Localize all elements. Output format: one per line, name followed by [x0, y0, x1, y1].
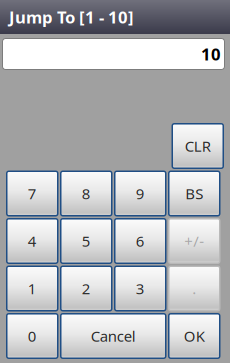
staticText: BS [185, 183, 203, 204]
staticText: 7 [28, 183, 37, 204]
staticText: Jump To [1 - 10] [9, 6, 134, 28]
button[interactable]: CLR [171, 123, 224, 169]
button[interactable]: 0 [6, 313, 58, 359]
button[interactable]: 4 [6, 218, 58, 264]
staticText: 4 [28, 231, 37, 251]
staticText: OK [184, 326, 205, 346]
staticText: 0 [28, 326, 37, 346]
staticText: +/- [184, 231, 204, 251]
button[interactable]: 6 [114, 218, 166, 264]
button[interactable]: 2 [60, 265, 112, 311]
staticText: 10 [201, 43, 221, 65]
button[interactable]: 1 [6, 265, 58, 311]
button[interactable]: 7 [6, 170, 58, 216]
button[interactable]: 3 [114, 265, 166, 311]
button[interactable]: Cancel [60, 313, 166, 359]
staticText: CLR [185, 136, 211, 156]
button[interactable]: +/- [168, 218, 220, 264]
staticText: Cancel [91, 326, 136, 346]
staticText: 5 [82, 231, 91, 251]
button[interactable]: . [168, 265, 220, 311]
button[interactable]: BS [168, 170, 220, 216]
staticText: 9 [136, 183, 145, 204]
staticText: 2 [82, 278, 91, 299]
staticText: 8 [82, 183, 91, 204]
button[interactable]: 9 [114, 170, 166, 216]
staticText: 1 [28, 278, 37, 299]
button[interactable]: 5 [60, 218, 112, 264]
staticText: . [192, 278, 196, 299]
button[interactable]: OK [168, 313, 220, 359]
staticText: 6 [136, 231, 145, 251]
button[interactable]: 8 [60, 170, 112, 216]
staticText: 3 [136, 278, 145, 299]
